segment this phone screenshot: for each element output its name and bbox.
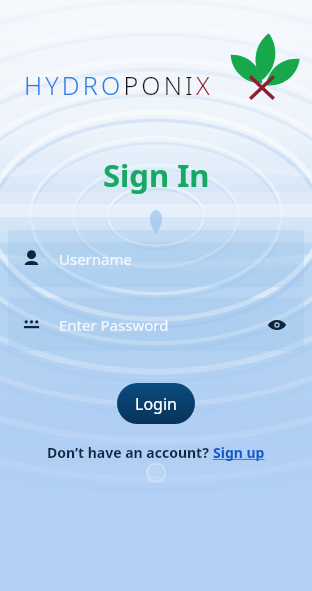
button[interactable]: Enter Password: [8, 298, 304, 351]
staticText: Sign up: [213, 443, 265, 462]
button[interactable]: Show password: [264, 312, 290, 338]
button[interactable]: Username: [8, 230, 304, 287]
staticText: HYDROPONIX: [24, 68, 210, 102]
staticText: Username: [59, 249, 132, 269]
staticText: Don’t have an account?: [47, 443, 213, 462]
button[interactable]: Sign up: [213, 443, 265, 462]
button[interactable]: Login: [117, 383, 195, 424]
staticText: Sign In: [103, 154, 210, 196]
staticText: Login: [135, 393, 177, 415]
staticText: Enter Password: [59, 315, 264, 335]
